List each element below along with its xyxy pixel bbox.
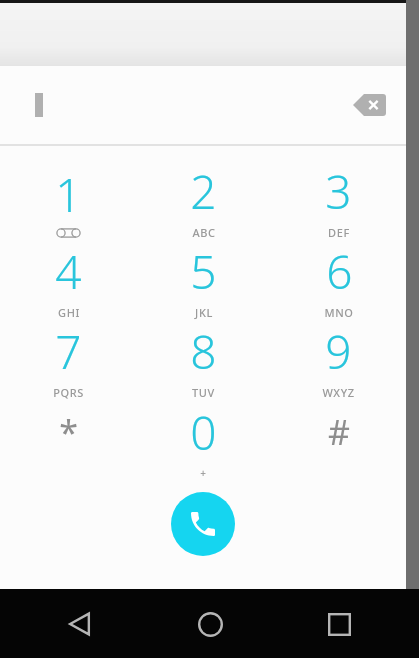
staticText: 4 [55, 240, 82, 303]
staticText: GHI [58, 305, 80, 320]
staticText: 8 [190, 320, 217, 383]
button[interactable]: More options [14, 80, 64, 130]
button[interactable]: Backspace [343, 79, 395, 131]
button[interactable]: Back [52, 596, 108, 652]
button[interactable]: 8 [136, 320, 271, 400]
button[interactable]: 6 [271, 240, 406, 320]
button[interactable]: 2 [136, 160, 271, 240]
button[interactable]: 4 [0, 240, 136, 320]
staticText: DEF [328, 225, 350, 240]
button[interactable]: 1 [0, 160, 136, 240]
staticText: ABC [192, 225, 216, 240]
button[interactable]: 3 [271, 160, 406, 240]
staticText: + [200, 466, 207, 480]
button[interactable]: 7 [0, 320, 136, 400]
button[interactable]: Call [171, 492, 235, 556]
staticText: 3 [325, 160, 352, 223]
staticText: 2 [190, 160, 217, 223]
staticText: 7 [55, 320, 82, 383]
staticText: WXYZ [322, 385, 355, 400]
staticText: 6 [326, 240, 353, 303]
staticText: 9 [325, 320, 352, 383]
button[interactable]: * [0, 400, 136, 480]
button[interactable]: 9 [271, 320, 406, 400]
staticText: 0 [190, 401, 217, 464]
staticText: MNO [324, 305, 354, 320]
staticText: TUV [192, 385, 215, 400]
button[interactable]: Home [182, 596, 238, 652]
button[interactable]: 0 [136, 400, 271, 480]
staticText: # [328, 409, 350, 455]
button[interactable]: 5 [136, 240, 271, 320]
staticText: 5 [190, 240, 217, 303]
staticText: 1 [55, 163, 82, 226]
button[interactable]: Recents [311, 596, 367, 652]
staticText: JKL [195, 305, 213, 320]
staticText: PQRS [53, 385, 84, 400]
staticText: * [59, 409, 78, 455]
button[interactable]: # [271, 400, 406, 480]
